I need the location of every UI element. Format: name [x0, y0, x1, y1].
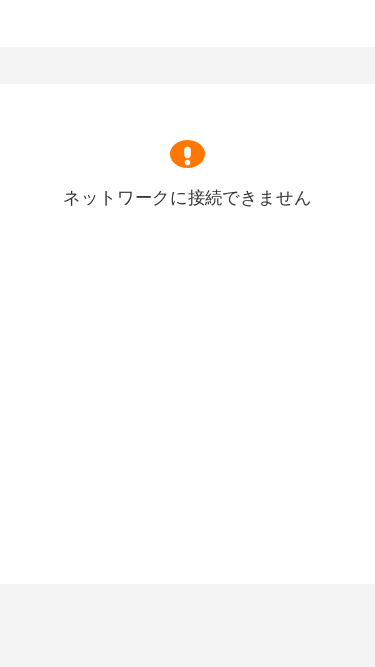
staticText: ネットワークに接続できません — [63, 187, 312, 208]
